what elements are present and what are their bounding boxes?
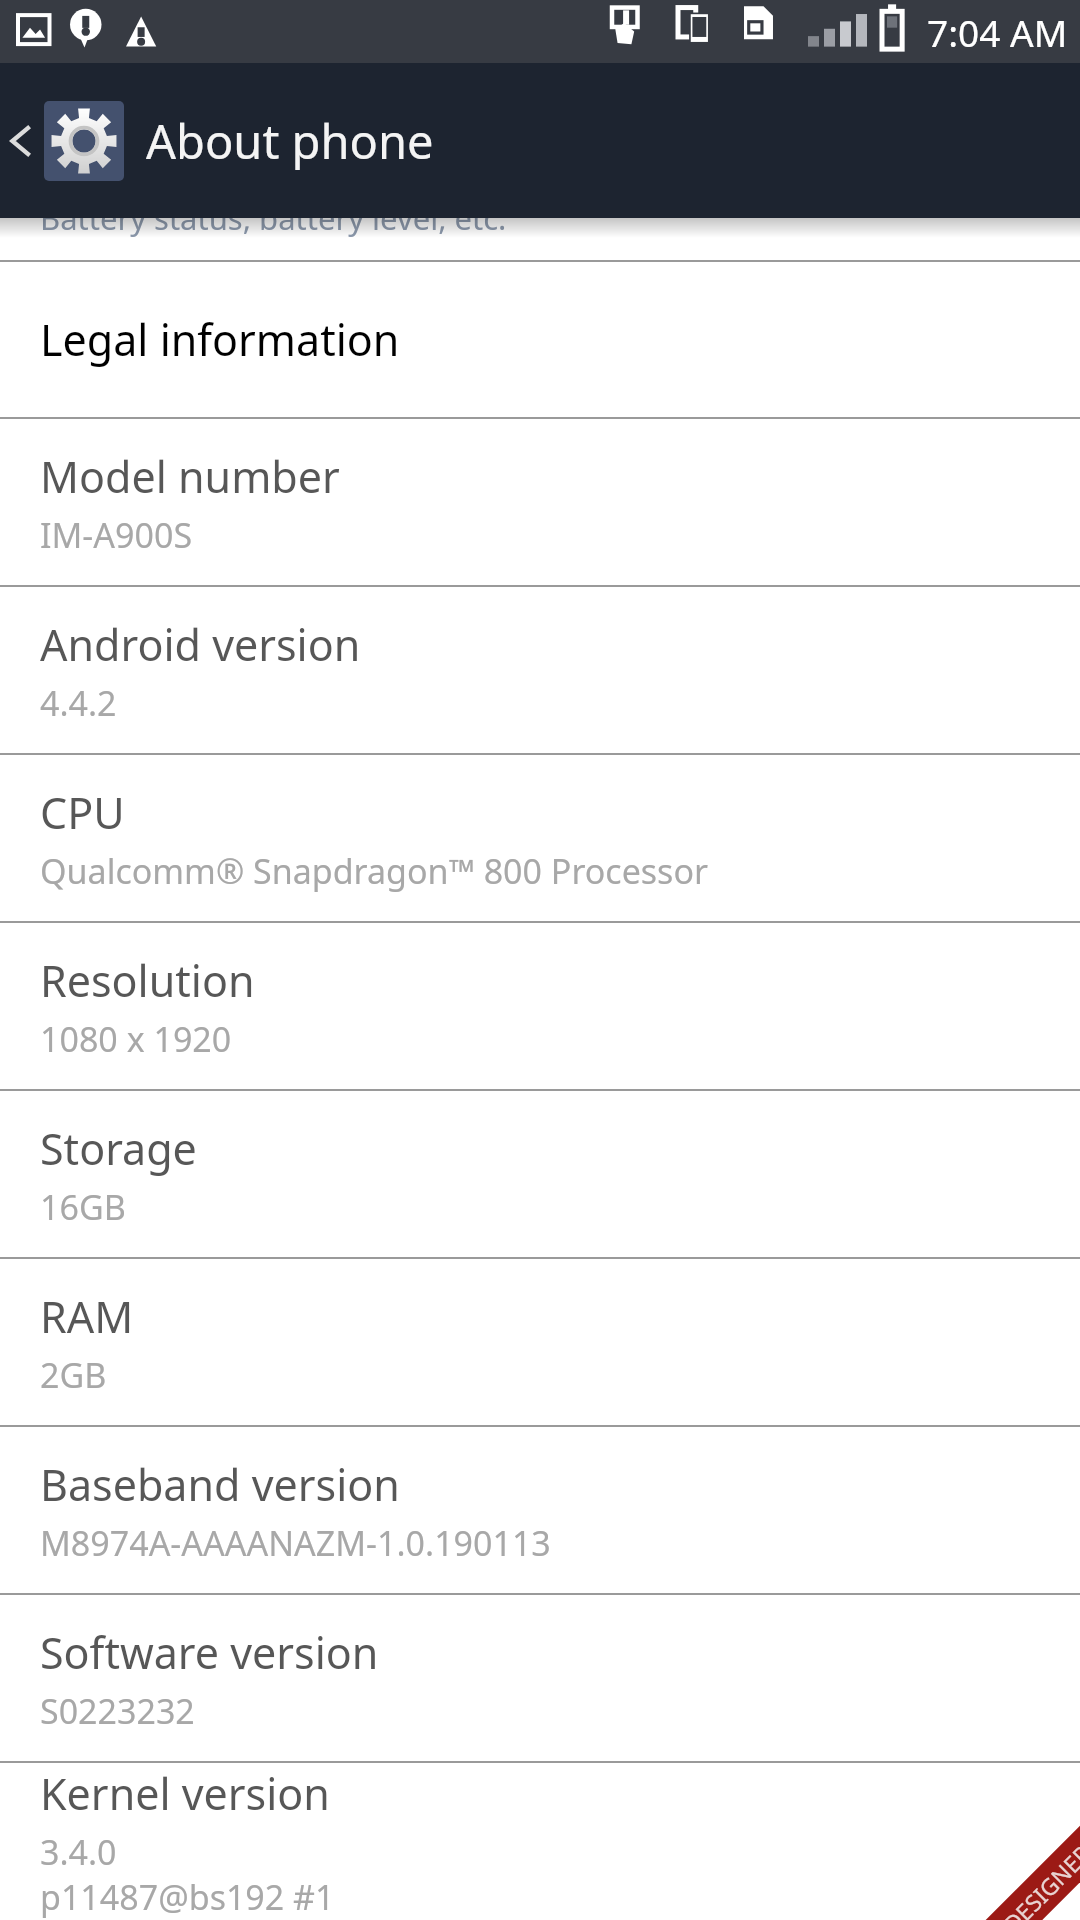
button[interactable]: Settings — [44, 101, 124, 181]
button[interactable]: CPU — [0, 755, 1080, 921]
staticText: Storage — [40, 1119, 197, 1178]
staticText: Model number — [40, 447, 340, 506]
staticText: 3.4.0 p11487@bs192 #1 — [40, 1829, 335, 1919]
staticText: 7:04 AM — [927, 7, 1068, 57]
staticText: Battery status, battery level, etc. — [40, 218, 507, 239]
staticText: 1080 x 1920 — [40, 1016, 232, 1062]
button[interactable]: Legal information — [0, 262, 1080, 417]
button[interactable]: Back — [0, 63, 42, 218]
button[interactable]: Software version — [0, 1595, 1080, 1761]
staticText: Software version — [40, 1623, 379, 1682]
button[interactable]: Battery status, battery level, etc. — [0, 218, 1080, 260]
staticText: S0223232 — [40, 1688, 195, 1734]
staticText: VIETDESIGNER.NET — [963, 1803, 1080, 1920]
staticText: 2GB — [40, 1352, 107, 1398]
button[interactable]: Storage — [0, 1091, 1080, 1257]
staticText: About phone — [146, 109, 434, 173]
staticText: Baseband version — [40, 1455, 400, 1514]
staticText: Resolution — [40, 951, 255, 1010]
button[interactable]: Model number — [0, 419, 1080, 585]
button[interactable]: RAM — [0, 1259, 1080, 1425]
staticText: IM-A900S — [40, 512, 193, 558]
staticText: Android version — [40, 615, 361, 674]
button[interactable]: Baseband version — [0, 1427, 1080, 1593]
staticText: CPU — [40, 783, 125, 842]
button[interactable]: Resolution — [0, 923, 1080, 1089]
staticText: Legal information — [40, 310, 400, 369]
staticText: RAM — [40, 1287, 134, 1346]
staticText: Kernel version — [40, 1764, 330, 1823]
button[interactable]: Kernel version — [0, 1763, 1080, 1920]
staticText: Qualcomm® Snapdragon™ 800 Processor — [40, 848, 708, 894]
staticText: 16GB — [40, 1184, 126, 1230]
button[interactable]: Android version — [0, 587, 1080, 753]
staticText: 4.4.2 — [40, 680, 117, 726]
staticText: M8974A-AAAANAZM-1.0.190113 — [40, 1520, 551, 1566]
